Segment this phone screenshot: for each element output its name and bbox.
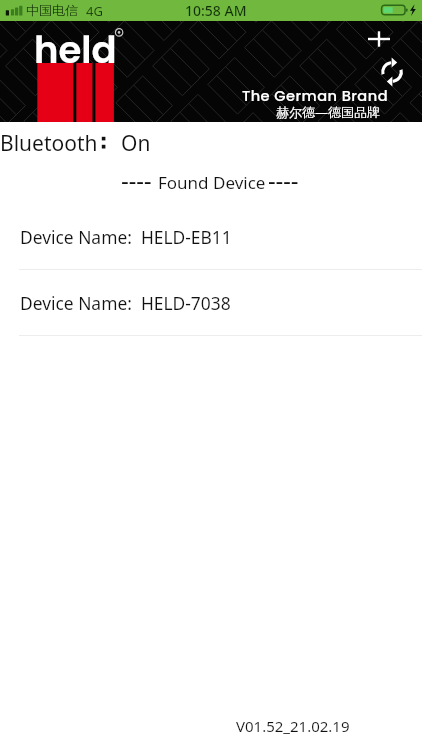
- staticText: The German Brand: [242, 86, 388, 106]
- button[interactable]: Add device: [364, 24, 394, 54]
- staticText: V01.52_21.02.19: [236, 716, 350, 736]
- staticText: Device Name: HELD-7038: [20, 291, 231, 315]
- staticText: On: [121, 129, 151, 158]
- button[interactable]: Device Name: HELD-7038: [0, 270, 422, 336]
- staticText: 4G: [86, 2, 103, 20]
- staticText: 中国电信: [26, 2, 78, 18]
- staticText: Found Device: [158, 171, 266, 194]
- button[interactable]: Refresh: [378, 55, 406, 89]
- button[interactable]: Device Name: HELD-EB11: [0, 204, 422, 270]
- staticText: 10:58 AM: [185, 1, 247, 20]
- staticText: held: [34, 24, 117, 76]
- staticText: 赫尔德—德国品牌: [276, 103, 381, 121]
- staticText: Bluetooth: [0, 129, 98, 158]
- staticText: Device Name: HELD-EB11: [20, 225, 232, 249]
